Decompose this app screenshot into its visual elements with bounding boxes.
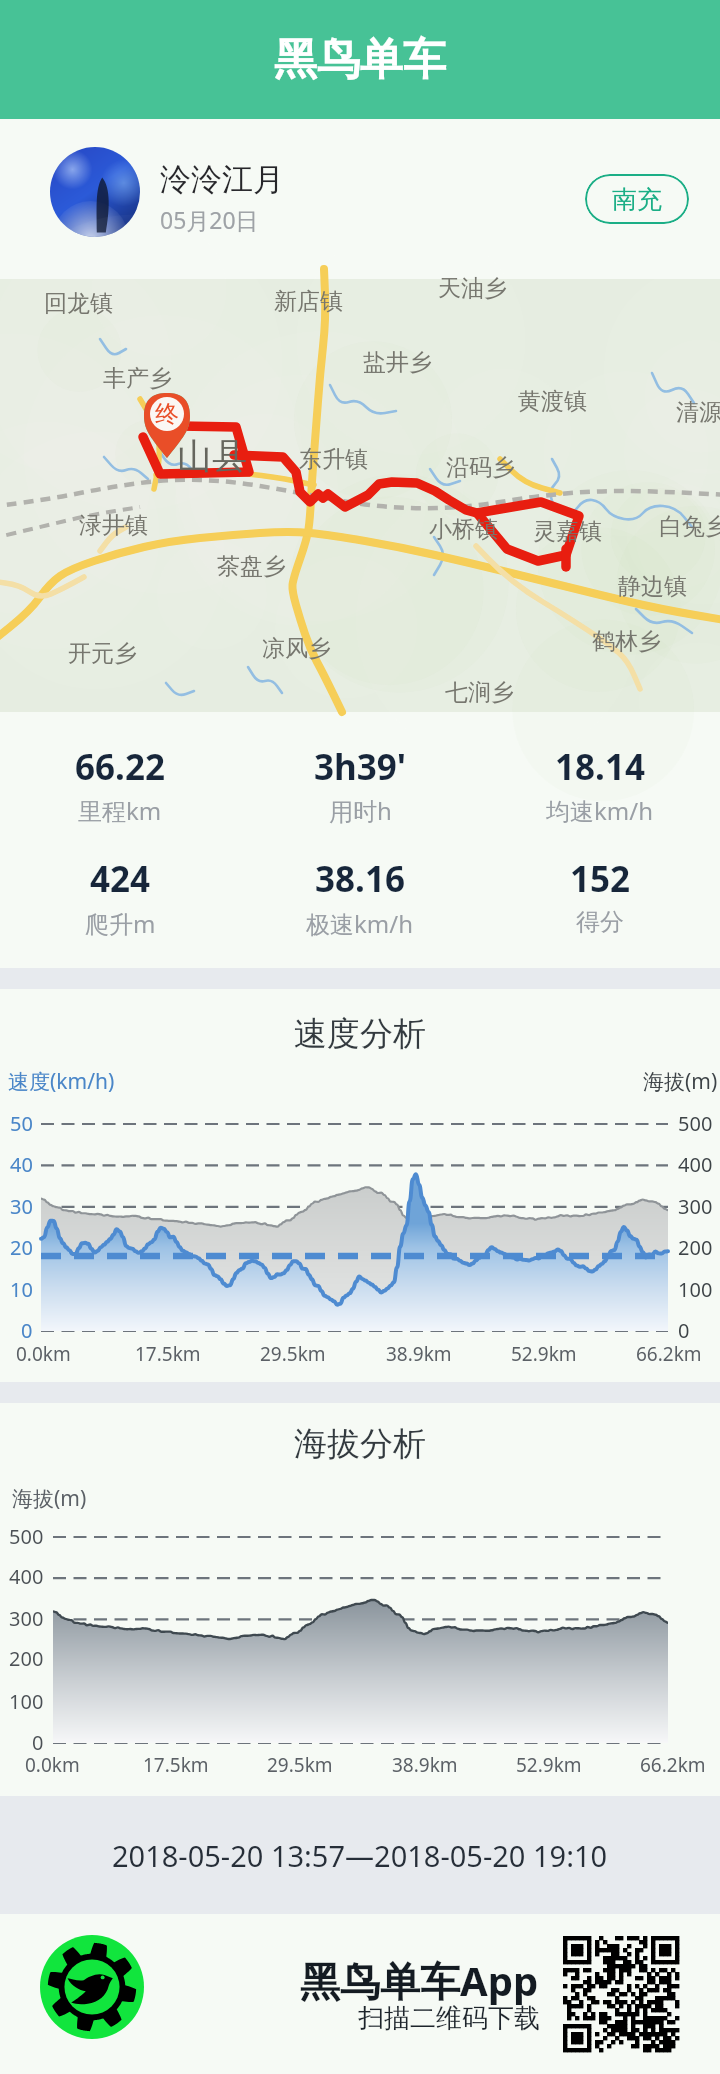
staticText: 424 bbox=[90, 855, 151, 903]
staticText: 0 bbox=[32, 1729, 44, 1756]
staticText: 500 bbox=[678, 1110, 713, 1137]
staticText: 66.2km bbox=[640, 1752, 706, 1778]
staticText: 66.22 bbox=[75, 743, 165, 791]
staticText: 凉风乡 bbox=[262, 634, 331, 663]
staticText: 66.2km bbox=[636, 1341, 702, 1367]
staticText: 海拔分析 bbox=[0, 1423, 720, 1465]
staticText: 10 bbox=[10, 1276, 33, 1303]
staticText: 海拔(m) bbox=[12, 1484, 87, 1513]
staticText: 500 bbox=[9, 1523, 44, 1550]
staticText: 白兔乡 bbox=[659, 512, 720, 541]
staticText: 29.5km bbox=[267, 1752, 333, 1778]
staticText: 盐井乡 bbox=[363, 348, 432, 377]
staticText: 38.16 bbox=[315, 855, 405, 903]
staticText: 200 bbox=[9, 1645, 44, 1672]
staticText: 灵嘉镇 bbox=[533, 517, 602, 546]
staticText: 渌井镇 bbox=[79, 511, 148, 540]
staticText: 400 bbox=[9, 1563, 44, 1590]
button[interactable]: 18.14 bbox=[480, 743, 720, 791]
button[interactable]: 152 bbox=[480, 855, 720, 903]
button[interactable]: 用时h bbox=[240, 794, 480, 827]
button[interactable]: Profile picture bbox=[50, 147, 140, 237]
staticText: 速度分析 bbox=[0, 1013, 720, 1055]
button[interactable]: 均速km/h bbox=[480, 794, 720, 827]
staticText: 29.5km bbox=[260, 1341, 326, 1367]
staticText: 300 bbox=[678, 1193, 713, 1220]
staticText: 泠泠江月 bbox=[160, 160, 284, 199]
button[interactable]: 3h39' bbox=[240, 743, 480, 791]
staticText: 黑鸟单车App bbox=[300, 1953, 539, 2008]
staticText: 38.9km bbox=[392, 1752, 458, 1778]
staticText: 30 bbox=[10, 1193, 33, 1220]
staticText: 38.9km bbox=[386, 1341, 452, 1367]
staticText: 均速km/h bbox=[546, 794, 654, 827]
staticText: 天油乡 bbox=[438, 274, 507, 303]
staticText: 丰产乡 bbox=[103, 364, 172, 393]
staticText: 18.14 bbox=[555, 743, 645, 791]
staticText: 南充 bbox=[612, 184, 662, 215]
staticText: 鹤林乡 bbox=[592, 627, 661, 656]
staticText: 海拔(m) bbox=[643, 1067, 718, 1096]
staticText: 爬升m bbox=[85, 907, 156, 940]
staticText: 52.9km bbox=[511, 1341, 577, 1367]
staticText: 152 bbox=[570, 855, 631, 903]
button[interactable]: 66.22 bbox=[0, 743, 240, 791]
staticText: 黑鸟单车 bbox=[274, 33, 446, 87]
staticText: 里程km bbox=[78, 794, 162, 827]
staticText: 清源 bbox=[676, 398, 720, 427]
staticText: 扫描二维码下载 bbox=[358, 2002, 540, 2035]
staticText: 小桥镇 bbox=[429, 515, 498, 544]
staticText: 20 bbox=[10, 1234, 33, 1261]
staticText: 400 bbox=[678, 1151, 713, 1178]
staticText: 300 bbox=[9, 1605, 44, 1632]
staticText: 速度(km/h) bbox=[8, 1067, 115, 1096]
staticText: 3h39' bbox=[314, 743, 407, 791]
button[interactable]: Route map bbox=[0, 279, 720, 712]
staticText: 用时h bbox=[329, 794, 392, 827]
staticText: 17.5km bbox=[135, 1341, 201, 1367]
staticText: 0 bbox=[678, 1317, 690, 1344]
staticText: 极速km/h bbox=[306, 907, 414, 940]
staticText: 0.0km bbox=[16, 1341, 71, 1367]
button[interactable]: Blackbird Cycling logo bbox=[40, 1935, 144, 2039]
staticText: 200 bbox=[678, 1234, 713, 1261]
button[interactable]: 极速km/h bbox=[240, 907, 480, 940]
staticText: 40 bbox=[10, 1151, 33, 1178]
staticText: 05月20日 bbox=[160, 204, 259, 235]
button[interactable]: 得分 bbox=[480, 907, 720, 937]
staticText: 开元乡 bbox=[68, 639, 137, 668]
staticText: 100 bbox=[678, 1276, 713, 1303]
button[interactable]: 里程km bbox=[0, 794, 240, 827]
staticText: 新店镇 bbox=[274, 287, 343, 316]
button[interactable]: 爬升m bbox=[0, 907, 240, 940]
staticText: 2018-05-20 13:57—2018-05-20 19:10 bbox=[112, 1836, 608, 1875]
staticText: 七涧乡 bbox=[445, 678, 514, 707]
staticText: 黄渡镇 bbox=[518, 387, 587, 416]
staticText: 52.9km bbox=[516, 1752, 582, 1778]
staticText: 17.5km bbox=[143, 1752, 209, 1778]
button[interactable]: QR code to download app bbox=[563, 1936, 679, 2052]
button[interactable]: 南充 bbox=[585, 174, 689, 224]
staticText: 东升镇 bbox=[299, 445, 368, 474]
staticText: 0 bbox=[21, 1317, 33, 1344]
button[interactable]: 424 bbox=[0, 855, 240, 903]
staticText: 茶盘乡 bbox=[217, 552, 286, 581]
staticText: 终 bbox=[155, 399, 179, 429]
staticText: 回龙镇 bbox=[44, 289, 113, 318]
staticText: 得分 bbox=[576, 907, 624, 937]
staticText: 0.0km bbox=[25, 1752, 80, 1778]
staticText: 沿码乡 bbox=[446, 453, 515, 482]
staticText: 100 bbox=[9, 1688, 44, 1715]
staticText: 50 bbox=[10, 1110, 33, 1137]
button[interactable]: 38.16 bbox=[240, 855, 480, 903]
staticText: 静边镇 bbox=[618, 572, 687, 601]
staticText: 山县 bbox=[177, 434, 247, 478]
